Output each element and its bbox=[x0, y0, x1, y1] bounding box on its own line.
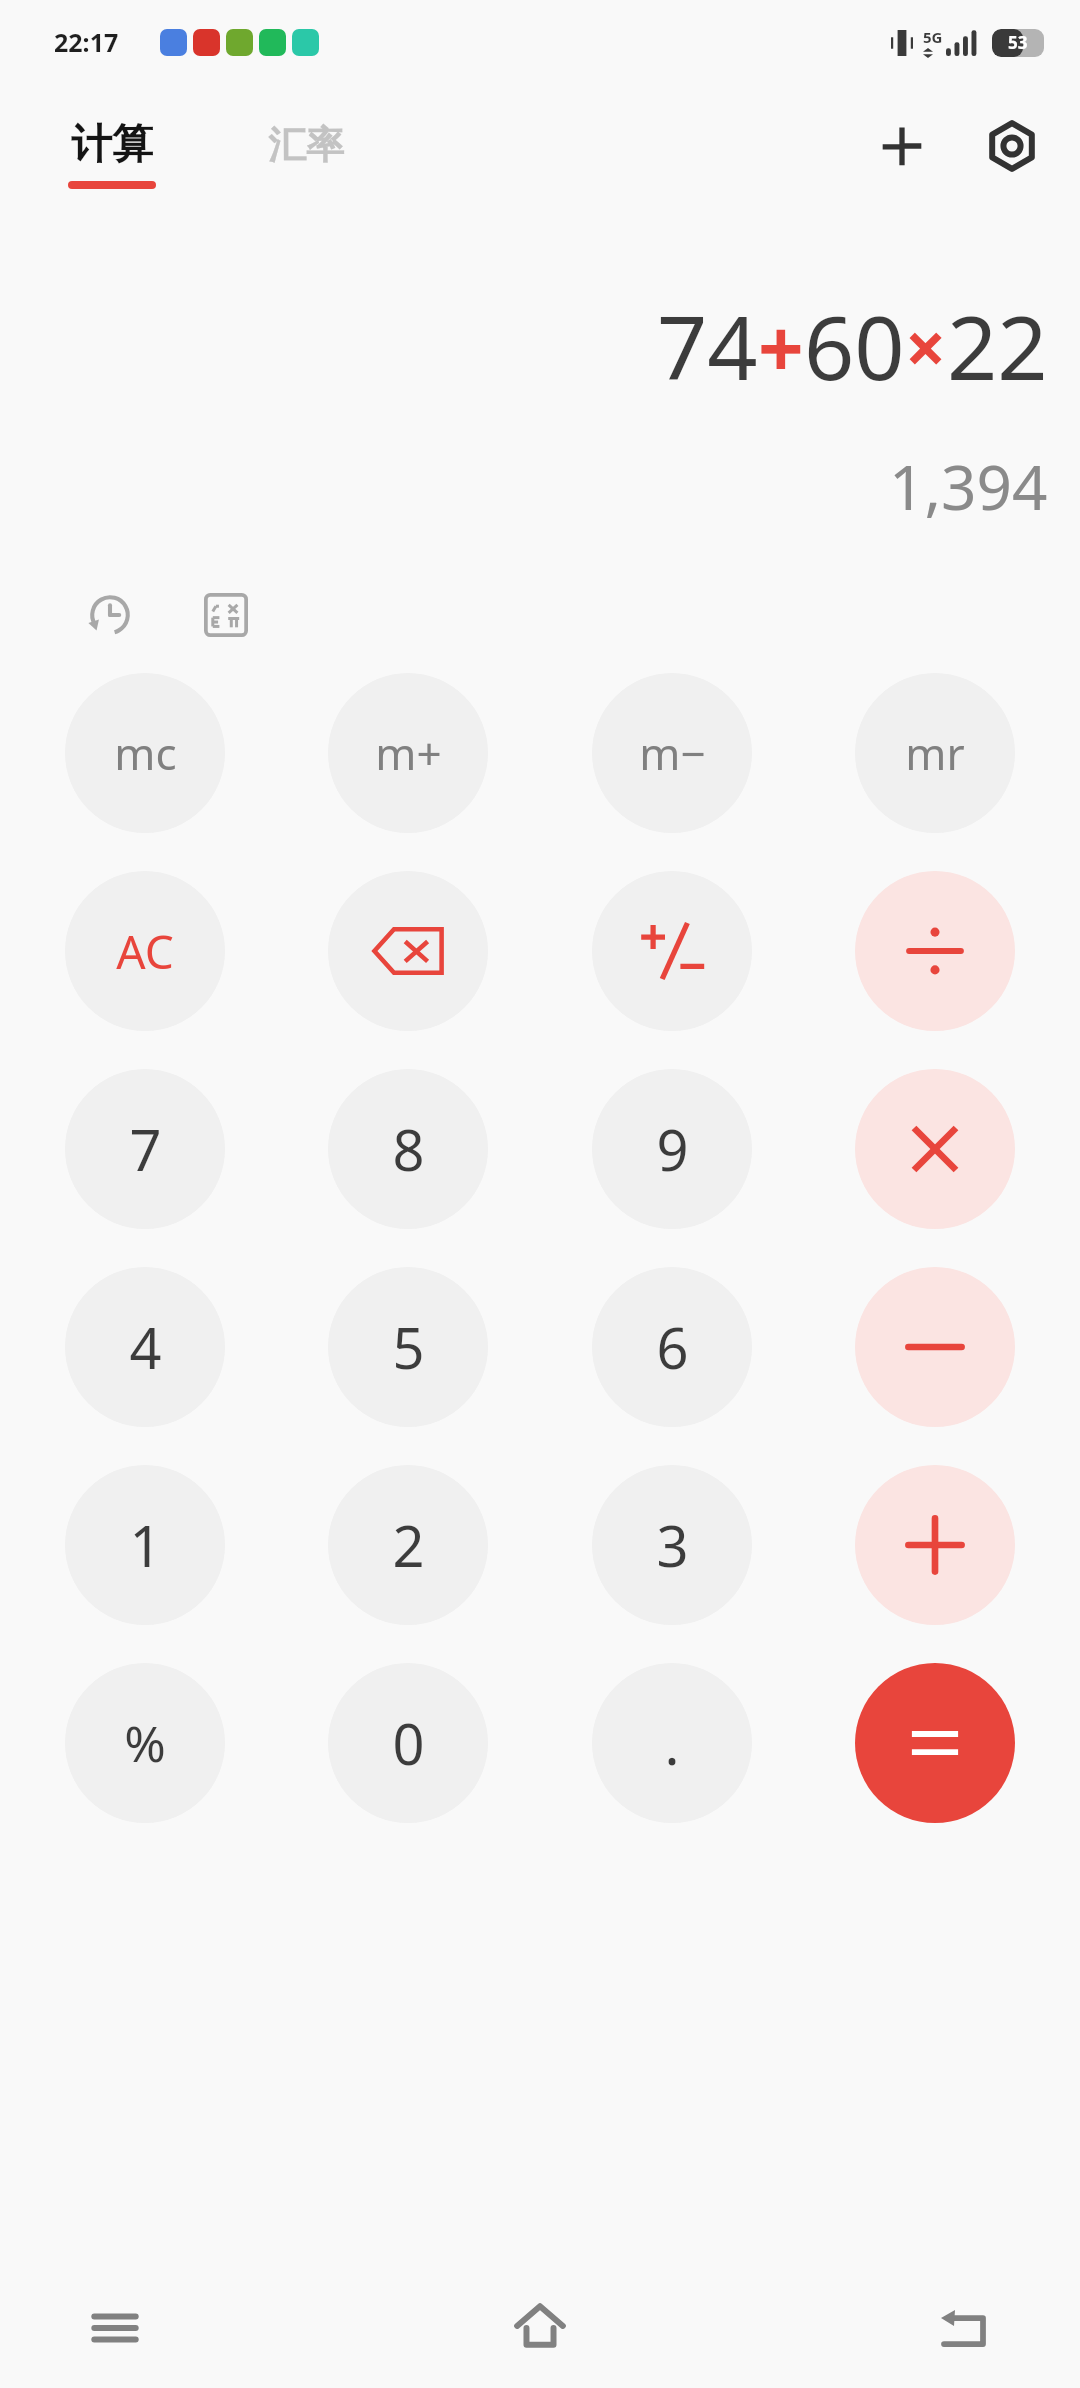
staticText: 53 bbox=[1008, 31, 1028, 54]
button[interactable]: Plus minus bbox=[592, 871, 752, 1031]
button[interactable]: 9 bbox=[592, 1069, 752, 1229]
button[interactable]: History bbox=[78, 583, 142, 647]
staticText: 1 bbox=[129, 1507, 162, 1583]
button[interactable]: . bbox=[592, 1663, 752, 1823]
button[interactable]: Plus bbox=[855, 1465, 1015, 1625]
staticText: 4 bbox=[129, 1309, 162, 1385]
button[interactable]: mc bbox=[65, 673, 225, 833]
button[interactable]: Back bbox=[910, 2273, 1020, 2383]
button[interactable]: 6 bbox=[592, 1267, 752, 1427]
staticText: 8 bbox=[392, 1111, 425, 1187]
button[interactable]: 0 bbox=[328, 1663, 488, 1823]
staticText: 7 bbox=[129, 1111, 162, 1187]
button[interactable]: Minus bbox=[855, 1267, 1015, 1427]
button[interactable]: 8 bbox=[328, 1069, 488, 1229]
staticText: 3 bbox=[656, 1507, 689, 1583]
button[interactable]: 2 bbox=[328, 1465, 488, 1625]
button[interactable]: Multiply bbox=[855, 1069, 1015, 1229]
staticText: mc bbox=[114, 723, 177, 783]
button[interactable]: Equals bbox=[855, 1663, 1015, 1823]
button[interactable]: Collapse bbox=[866, 110, 938, 182]
button[interactable]: 3 bbox=[592, 1465, 752, 1625]
staticText: 1,394 bbox=[889, 444, 1048, 528]
button[interactable]: 计算 bbox=[68, 119, 156, 189]
staticText: × bbox=[905, 297, 947, 395]
button[interactable]: Settings bbox=[974, 108, 1050, 184]
staticText: 5 bbox=[392, 1309, 425, 1385]
button[interactable]: 5 bbox=[328, 1267, 488, 1427]
staticText: 22:17 bbox=[54, 25, 119, 59]
button[interactable]: Backspace bbox=[328, 871, 488, 1031]
staticText: 5G bbox=[923, 27, 943, 47]
button[interactable]: m+ bbox=[328, 673, 488, 833]
staticText: + bbox=[758, 292, 804, 401]
button[interactable]: m− bbox=[592, 673, 752, 833]
button[interactable]: % bbox=[65, 1663, 225, 1823]
button[interactable]: AC bbox=[65, 871, 225, 1031]
staticText: m+ bbox=[375, 723, 442, 783]
staticText: 74 bbox=[657, 286, 758, 406]
staticText: 22 bbox=[947, 286, 1048, 406]
button[interactable]: 7 bbox=[65, 1069, 225, 1229]
button[interactable]: Home bbox=[485, 2273, 595, 2383]
staticText: mr bbox=[905, 723, 965, 783]
staticText: 汇率 bbox=[268, 121, 344, 169]
staticText: 2 bbox=[392, 1507, 425, 1583]
button[interactable]: 汇率 bbox=[268, 121, 344, 169]
button[interactable]: 1 bbox=[65, 1465, 225, 1625]
staticText: 计算 bbox=[71, 119, 153, 171]
button[interactable]: 4 bbox=[65, 1267, 225, 1427]
staticText: 9 bbox=[656, 1111, 689, 1187]
button[interactable]: Formulas bbox=[194, 583, 258, 647]
staticText: 60 bbox=[804, 286, 905, 406]
staticText: AC bbox=[116, 920, 174, 983]
staticText: 0 bbox=[392, 1705, 425, 1781]
button[interactable]: mr bbox=[855, 673, 1015, 833]
button[interactable]: Recent apps bbox=[60, 2273, 170, 2383]
staticText: % bbox=[124, 1709, 166, 1777]
button[interactable]: Divide bbox=[855, 871, 1015, 1031]
staticText: 6 bbox=[656, 1309, 689, 1385]
staticText: m− bbox=[639, 723, 706, 783]
staticText: . bbox=[664, 1705, 680, 1781]
